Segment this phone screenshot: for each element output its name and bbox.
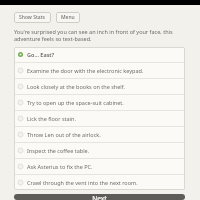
button[interactable]: Lick the floor stain. [14, 111, 185, 126]
staticText: Ask Asterius to fix the PC. [27, 163, 93, 170]
button[interactable]: Crawl through the vent into the next roo… [14, 175, 185, 190]
staticText: Next [92, 194, 107, 200]
button[interactable]: Look closely at the books on the shelf. [14, 79, 185, 94]
staticText: You're surprised you can see an inch in … [14, 28, 186, 42]
button[interactable]: Examine the door with the electronic key… [14, 63, 185, 78]
button[interactable]: Go... East? [14, 47, 185, 62]
button[interactable]: Inspect the coffee table. [14, 143, 185, 158]
staticText: Menu [61, 14, 75, 21]
button[interactable]: Next [14, 194, 185, 200]
staticText: Throw Len out of the airlock. [27, 131, 101, 138]
button[interactable]: Throw Len out of the airlock. [14, 127, 185, 142]
button[interactable]: Show Stats [14, 12, 51, 23]
staticText: Look closely at the books on the shelf. [27, 83, 126, 90]
button[interactable]: Menu [56, 12, 80, 23]
button[interactable]: Ask Asterius to fix the PC. [14, 159, 185, 174]
staticText: Examine the door with the electronic key… [27, 67, 144, 74]
staticText: Crawl through the vent into the next roo… [27, 179, 138, 186]
staticText: Lick the floor stain. [27, 115, 76, 122]
staticText: Try to open up the space-suit cabinet. [27, 99, 124, 106]
staticText: Inspect the coffee table. [27, 147, 90, 154]
button[interactable]: Try to open up the space-suit cabinet. [14, 95, 185, 110]
staticText: Go... East? [27, 51, 55, 58]
staticText: Show Stats [19, 14, 46, 21]
